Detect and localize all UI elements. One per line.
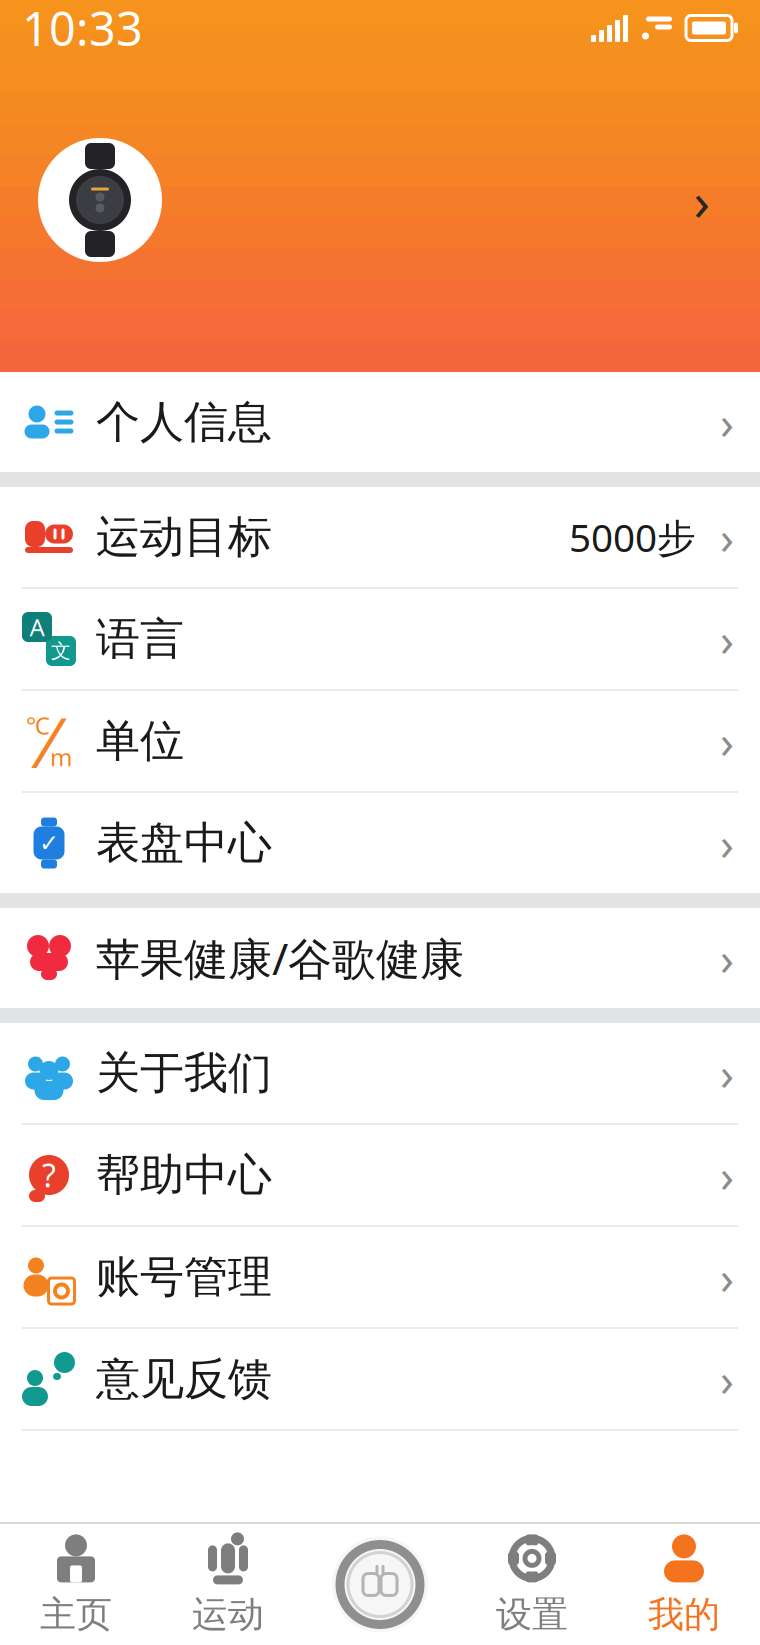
- button[interactable]: 文: [0, 589, 760, 689]
- staticText: 语言: [96, 612, 184, 666]
- button[interactable]: 主页: [0, 1524, 152, 1645]
- button[interactable]: ✓: [0, 793, 760, 893]
- staticText: ?: [42, 1154, 56, 1196]
- staticText: 运动: [192, 1592, 264, 1637]
- button[interactable]: Device details: [672, 170, 760, 230]
- staticText: ›: [720, 609, 734, 669]
- staticText: 意见反馈: [96, 1352, 272, 1406]
- staticText: ℃: [26, 709, 50, 741]
- button[interactable]: ⁄: [0, 691, 760, 791]
- staticText: ›: [720, 928, 734, 988]
- button[interactable]: 意见反馈: [0, 1329, 760, 1429]
- button[interactable]: 运动目标: [0, 487, 760, 587]
- staticText: ›: [720, 1247, 734, 1307]
- staticText: A: [29, 611, 44, 643]
- staticText: 帮助中心: [96, 1148, 272, 1202]
- button[interactable]: 关于我们: [0, 1023, 760, 1123]
- staticText: 主页: [40, 1592, 112, 1637]
- button[interactable]: Connect device: [304, 1524, 456, 1645]
- button[interactable]: 运动: [152, 1524, 304, 1645]
- button[interactable]: 苹果健康/谷歌健康: [0, 908, 760, 1008]
- staticText: ›: [720, 507, 734, 567]
- staticText: ›: [720, 1043, 734, 1103]
- staticText: ⁄: [44, 695, 53, 787]
- staticText: ›: [720, 711, 734, 771]
- staticText: 账号管理: [96, 1250, 272, 1304]
- staticText: ›: [720, 813, 734, 873]
- staticText: ✓: [39, 829, 59, 857]
- staticText: ›: [720, 392, 734, 452]
- staticText: 关于我们: [96, 1046, 272, 1100]
- staticText: m: [50, 741, 72, 773]
- button[interactable]: 个人信息: [0, 372, 760, 472]
- staticText: 5000步: [569, 511, 696, 563]
- button[interactable]: 设置: [456, 1524, 608, 1645]
- button[interactable]: Connected device: [0, 138, 162, 262]
- staticText: 运动目标: [96, 510, 272, 564]
- staticText: 我的: [648, 1592, 720, 1637]
- button[interactable]: ?: [0, 1125, 760, 1225]
- staticText: ›: [720, 1349, 734, 1409]
- staticText: ›: [720, 1145, 734, 1205]
- staticText: 单位: [96, 714, 184, 768]
- staticText: 个人信息: [96, 395, 272, 449]
- staticText: 文: [51, 639, 71, 663]
- staticText: 表盘中心: [96, 816, 272, 870]
- button[interactable]: 账号管理: [0, 1227, 760, 1327]
- button[interactable]: 我的: [608, 1524, 760, 1645]
- staticText: 苹果健康/谷歌健康: [96, 929, 464, 987]
- staticText: ›: [693, 165, 710, 235]
- staticText: 10:33: [22, 0, 143, 59]
- staticText: 设置: [496, 1592, 568, 1637]
